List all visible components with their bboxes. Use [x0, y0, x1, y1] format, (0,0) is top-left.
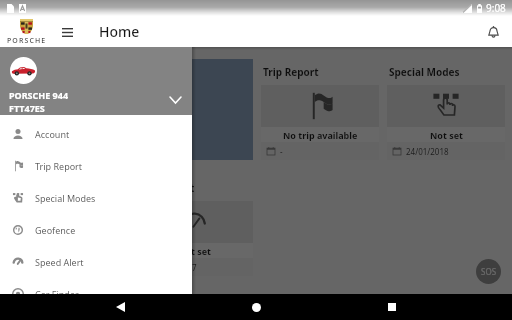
- staticText: Speed Alert: [35, 256, 84, 268]
- staticText: No trip available: [283, 129, 358, 141]
- button[interactable]: Recent apps: [376, 294, 408, 320]
- button[interactable]: Car Finder: [0, 278, 192, 310]
- staticText: Special Modes: [389, 65, 460, 79]
- button[interactable]: Open navigation drawer: [52, 17, 82, 47]
- staticText: Geofence: [35, 224, 76, 236]
- staticText: -: [280, 146, 283, 157]
- button[interactable]: Speed Alert: [135, 175, 253, 276]
- staticText: Account: [35, 128, 70, 140]
- button[interactable]: Trip Report: [0, 150, 192, 182]
- staticText: Car Finder: [35, 288, 79, 300]
- button[interactable]: Special Modes: [387, 59, 505, 160]
- staticText: Not set: [430, 129, 463, 141]
- button[interactable]: Geofence: [0, 214, 192, 246]
- staticText: Speed Alert: [137, 181, 195, 195]
- staticText: 9:08: [486, 1, 506, 15]
- button[interactable]: Home: [240, 294, 272, 320]
- button[interactable]: Speed Alert: [0, 246, 192, 278]
- staticText: Home: [99, 22, 140, 41]
- button[interactable]: Special Modes: [0, 182, 192, 214]
- staticText: SOS: [481, 266, 497, 277]
- staticText: Trip Report: [263, 65, 319, 79]
- staticText: FTT47ES: [9, 102, 45, 114]
- staticText: Trip Report: [35, 160, 83, 172]
- staticText: Not set: [178, 245, 211, 257]
- staticText: 24/01/2018: [406, 146, 449, 157]
- button[interactable]: Switch vehicle: [165, 90, 185, 110]
- button[interactable]: Account: [0, 118, 192, 150]
- button[interactable]: Notifications: [477, 16, 509, 47]
- button[interactable]: Trip Report: [261, 59, 379, 160]
- button[interactable]: Emergency SOS: [476, 259, 501, 284]
- button[interactable]: Back: [104, 294, 136, 320]
- staticText: PORSCHE 944: [9, 89, 69, 101]
- button[interactable]: [135, 59, 253, 160]
- staticText: PORSCHE: [7, 36, 47, 46]
- staticText: 24/01/2017: [154, 262, 197, 273]
- staticText: Special Modes: [35, 192, 96, 204]
